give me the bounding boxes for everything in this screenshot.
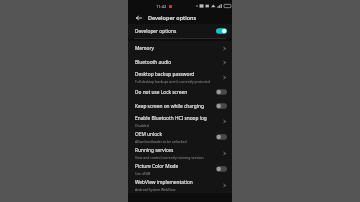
button[interactable]: Back xyxy=(134,13,144,23)
staticText: Keep screen on while charging xyxy=(135,103,204,110)
staticText: Developer options xyxy=(135,28,177,35)
button[interactable]: Memory xyxy=(128,41,232,55)
button[interactable]: Enable Bluetooth HCI snoop log xyxy=(128,113,232,129)
button[interactable]: Bluetooth audio xyxy=(128,55,232,69)
staticText: Use sRGB xyxy=(135,171,151,176)
staticText: View and control currently running servi… xyxy=(135,155,204,160)
button[interactable]: Do not use Lock screen xyxy=(128,85,232,99)
staticText: Allow bootloader to be unlocked xyxy=(135,139,187,144)
staticText: Disabled xyxy=(135,123,149,128)
staticText: Picture Color Mode xyxy=(135,163,179,170)
staticText: WebView implementation xyxy=(135,179,193,186)
staticText: 11:42 xyxy=(156,4,167,9)
staticText: Android System WebView xyxy=(135,187,176,192)
staticText: Running services xyxy=(135,147,174,154)
button[interactable]: Desktop backup password xyxy=(128,69,232,85)
button[interactable]: Picture Color Mode xyxy=(128,161,232,177)
staticText: Enable Bluetooth HCI snoop log xyxy=(135,115,207,122)
staticText: Desktop backup password xyxy=(135,71,195,78)
staticText: Full desktop backups aren't currently pr… xyxy=(135,79,210,84)
button[interactable]: WebView implementation xyxy=(128,177,232,193)
button[interactable]: Running services xyxy=(128,145,232,161)
button[interactable]: Keep screen on while charging xyxy=(128,99,232,113)
button[interactable]: Developer options xyxy=(128,24,232,38)
staticText: OEM unlock xyxy=(135,131,162,138)
button[interactable]: OEM unlock xyxy=(128,129,232,145)
staticText: Bluetooth audio xyxy=(135,59,172,66)
staticText: Do not use Lock screen xyxy=(135,89,188,96)
staticText: Developer options xyxy=(148,14,197,21)
staticText: Memory xyxy=(135,45,154,52)
